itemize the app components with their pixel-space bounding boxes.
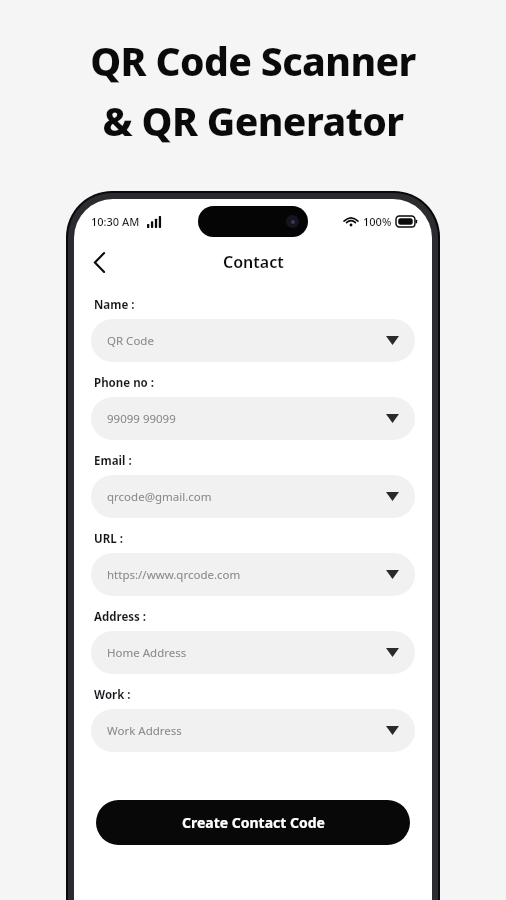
button[interactable]: Home Address: [91, 631, 415, 674]
staticText: Contact: [223, 251, 284, 273]
staticText: Name :: [94, 297, 135, 313]
staticText: 99099 99099: [107, 411, 176, 427]
button[interactable]: 99099 99099: [91, 397, 415, 440]
staticText: & QR Generator: [102, 94, 404, 147]
button[interactable]: QR Code: [91, 319, 415, 362]
staticText: QR Code: [107, 333, 154, 349]
button[interactable]: https://www.qrcode.com: [91, 553, 415, 596]
button[interactable]: Create Contact Code: [96, 800, 410, 845]
staticText: qrcode@gmail.com: [107, 489, 212, 505]
staticText: 100%: [363, 214, 392, 229]
staticText: Create Contact Code: [182, 813, 325, 832]
staticText: QR Code Scanner: [90, 34, 416, 87]
staticText: 10:30 AM: [91, 214, 140, 229]
button[interactable]: Back: [82, 245, 116, 279]
staticText: URL :: [94, 531, 123, 547]
button[interactable]: Work Address: [91, 709, 415, 752]
staticText: Email :: [94, 453, 132, 469]
staticText: Address :: [94, 609, 147, 625]
staticText: Work Address: [107, 723, 182, 739]
button[interactable]: qrcode@gmail.com: [91, 475, 415, 518]
staticText: Home Address: [107, 645, 187, 661]
staticText: https://www.qrcode.com: [107, 567, 241, 583]
staticText: Work :: [94, 687, 131, 703]
staticText: Phone no :: [94, 375, 155, 391]
